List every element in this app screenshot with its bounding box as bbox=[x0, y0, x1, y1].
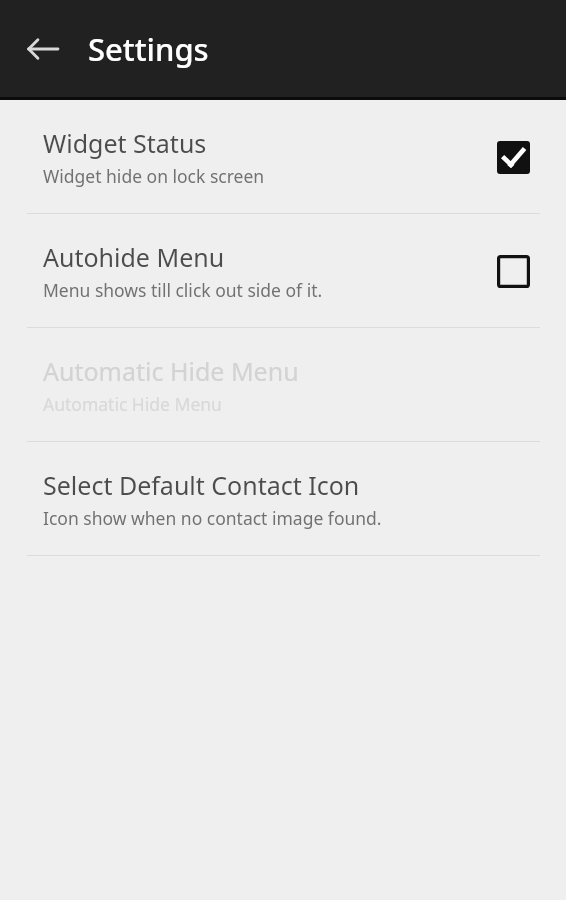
button[interactable]: Widget Status bbox=[0, 100, 566, 213]
staticText: Widget Status bbox=[43, 126, 207, 160]
staticText: Icon show when no contact image found. bbox=[43, 506, 382, 530]
staticText: Automatic Hide Menu bbox=[43, 354, 299, 388]
staticText: Widget hide on lock screen bbox=[43, 164, 265, 188]
button[interactable]: Back bbox=[16, 22, 70, 76]
button[interactable]: Widget status enabled bbox=[489, 133, 537, 181]
staticText: Settings bbox=[88, 28, 209, 70]
button[interactable]: Autohide menu disabled bbox=[489, 247, 537, 295]
staticText: Select Default Contact Icon bbox=[43, 468, 360, 502]
button[interactable]: Autohide Menu bbox=[0, 214, 566, 327]
staticText: Automatic Hide Menu bbox=[43, 392, 222, 416]
staticText: Autohide Menu bbox=[43, 240, 225, 274]
staticText: Menu shows till click out side of it. bbox=[43, 278, 323, 302]
button[interactable]: Automatic Hide Menu bbox=[0, 328, 566, 441]
button[interactable]: Select Default Contact Icon bbox=[0, 442, 566, 555]
